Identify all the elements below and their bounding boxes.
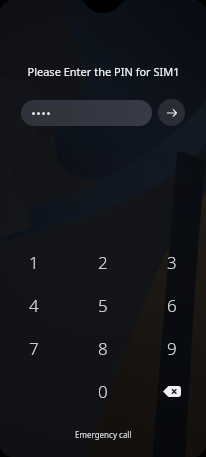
button[interactable]: 5 [68, 294, 137, 316]
button[interactable]: 3 [137, 251, 206, 273]
button[interactable] [21, 100, 152, 126]
staticText: 3 [167, 251, 177, 273]
staticText: 1 [29, 251, 39, 273]
staticText: 2 [98, 251, 108, 273]
button[interactable]: Submit PIN [158, 99, 185, 126]
button[interactable]: Emergency call [63, 426, 144, 443]
staticText: 9 [167, 337, 177, 359]
staticText: 4 [29, 294, 39, 316]
staticText: 7 [29, 337, 39, 359]
staticText: Please Enter the PIN for SIM1 [27, 64, 180, 79]
staticText: 8 [98, 337, 108, 359]
button[interactable]: 0 [68, 380, 137, 402]
button[interactable]: 9 [137, 337, 206, 359]
staticText: Emergency call [75, 429, 132, 440]
staticText: 0 [98, 380, 108, 402]
button[interactable]: 7 [0, 337, 68, 359]
staticText: 6 [167, 294, 177, 316]
staticText: 5 [98, 294, 108, 316]
button[interactable]: 8 [68, 337, 137, 359]
button[interactable]: 6 [137, 294, 206, 316]
button[interactable]: Backspace [137, 380, 206, 402]
button[interactable]: 1 [0, 251, 68, 273]
button[interactable]: 2 [68, 251, 137, 273]
button[interactable]: 4 [0, 294, 68, 316]
